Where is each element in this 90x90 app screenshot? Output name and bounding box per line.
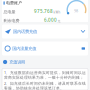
staticText: 6,000: [44, 17, 57, 23]
staticText: 总电量: [3, 9, 15, 14]
staticText: 国内话费充值: [13, 29, 37, 34]
staticText: 2、如充值后长时间仍未到账，请及时联系在线客服，协助核实并处理该笔订单。: [4, 81, 86, 90]
staticText: 1、充值数据由运营商实时提供，到账时间以运营商实际处理结果为准，一般十分钟内到账…: [4, 70, 86, 80]
staticText: 剩余电费: [3, 18, 19, 23]
staticText: 975.768: [34, 8, 53, 14]
staticText: 元: [57, 19, 60, 23]
staticText: 充值说明: [9, 59, 25, 65]
staticText: 国内流量充值: [12, 46, 36, 51]
staticText: 98: [74, 8, 78, 13]
button[interactable]: 国内流量充值: [2, 41, 88, 55]
staticText: kWh: [53, 10, 60, 14]
staticText: 电费账户: [6, 0, 22, 5]
button[interactable]: 国内话费充值: [2, 24, 88, 38]
